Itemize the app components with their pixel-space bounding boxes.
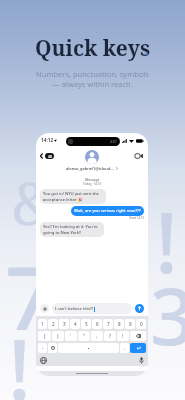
button[interactable]: Back [40, 153, 54, 159]
button[interactable]: Send [135, 304, 144, 313]
staticText: ! [155, 183, 178, 297]
staticText: ( [44, 333, 46, 339]
staticText: 3 [150, 262, 185, 368]
button[interactable]: 5 [81, 319, 91, 329]
button[interactable]: Add attachment [40, 304, 49, 313]
staticText: 5 [85, 321, 88, 327]
button[interactable]: ? [104, 331, 116, 341]
staticText: 14:12 [41, 137, 54, 144]
staticText: 4 [74, 321, 77, 327]
staticText: 6 [96, 321, 99, 327]
button[interactable]: " [78, 331, 90, 341]
button[interactable]: Video call [135, 153, 143, 159]
staticText: 9 [129, 321, 132, 327]
button[interactable]: 1 [38, 319, 47, 329]
staticText: You got in! NYU just sent the acceptance… [43, 191, 103, 202]
staticText: iMessage [40, 178, 144, 182]
button[interactable]: 0 [136, 319, 146, 329]
staticText: ! [122, 333, 124, 339]
staticText: - [42, 345, 44, 351]
button[interactable]: 2 [48, 319, 58, 329]
staticText: & [12, 163, 56, 242]
button[interactable]: I can't believe this!!! [55, 303, 129, 314]
staticText: Wait, are you serious right now??? [74, 208, 141, 214]
staticText: 2 [52, 321, 55, 327]
staticText: Numbers, punctuation, symbols — always w… [36, 69, 149, 89]
staticText: ! [8, 310, 31, 400]
staticText: Yes!! I'm looking at it. You're going to… [43, 224, 101, 235]
button[interactable]: 8 [114, 319, 124, 329]
button[interactable]: Backspace [130, 331, 146, 341]
staticText: 3 [63, 321, 66, 327]
button[interactable]: Dictate [139, 357, 144, 364]
staticText: alonso_gabriel1@icloud.... [66, 166, 115, 171]
staticText: . [124, 345, 126, 351]
staticText: I can't believe this!!! [55, 306, 94, 312]
button[interactable]: - [38, 343, 47, 353]
button[interactable]: Space [58, 343, 119, 353]
button[interactable]: ! [117, 331, 129, 341]
staticText: 8 [118, 321, 121, 327]
button[interactable]: 7 [103, 319, 113, 329]
staticText: ? [109, 333, 111, 339]
staticText: 1 [41, 321, 44, 327]
button[interactable]: Change language [40, 357, 47, 364]
button[interactable]: ' [65, 331, 77, 341]
staticText: Quick keys [35, 34, 151, 63]
staticText: , [96, 333, 98, 339]
button[interactable]: 9 [125, 319, 135, 329]
button[interactable]: , [91, 331, 103, 341]
button[interactable]: . [120, 343, 129, 353]
button[interactable]: 6 [92, 319, 102, 329]
staticText: ) [57, 333, 59, 339]
button[interactable]: ) [52, 331, 64, 341]
staticText: 7 [5, 236, 56, 356]
staticText: Read 14:10 [40, 216, 144, 220]
staticText: 7 [107, 321, 110, 327]
staticText: ' [70, 333, 72, 339]
button[interactable]: 3 [59, 319, 69, 329]
staticText: 0 [140, 321, 143, 327]
staticText: Today, 14:10 [40, 182, 144, 186]
staticText: 48 [48, 154, 52, 159]
staticText: 4:07 [110, 139, 117, 144]
button[interactable]: Emoji [48, 343, 57, 353]
button[interactable]: ( [38, 331, 51, 341]
button[interactable]: Return [130, 343, 146, 353]
button[interactable]: 4 [70, 319, 80, 329]
staticText: " [83, 333, 85, 339]
